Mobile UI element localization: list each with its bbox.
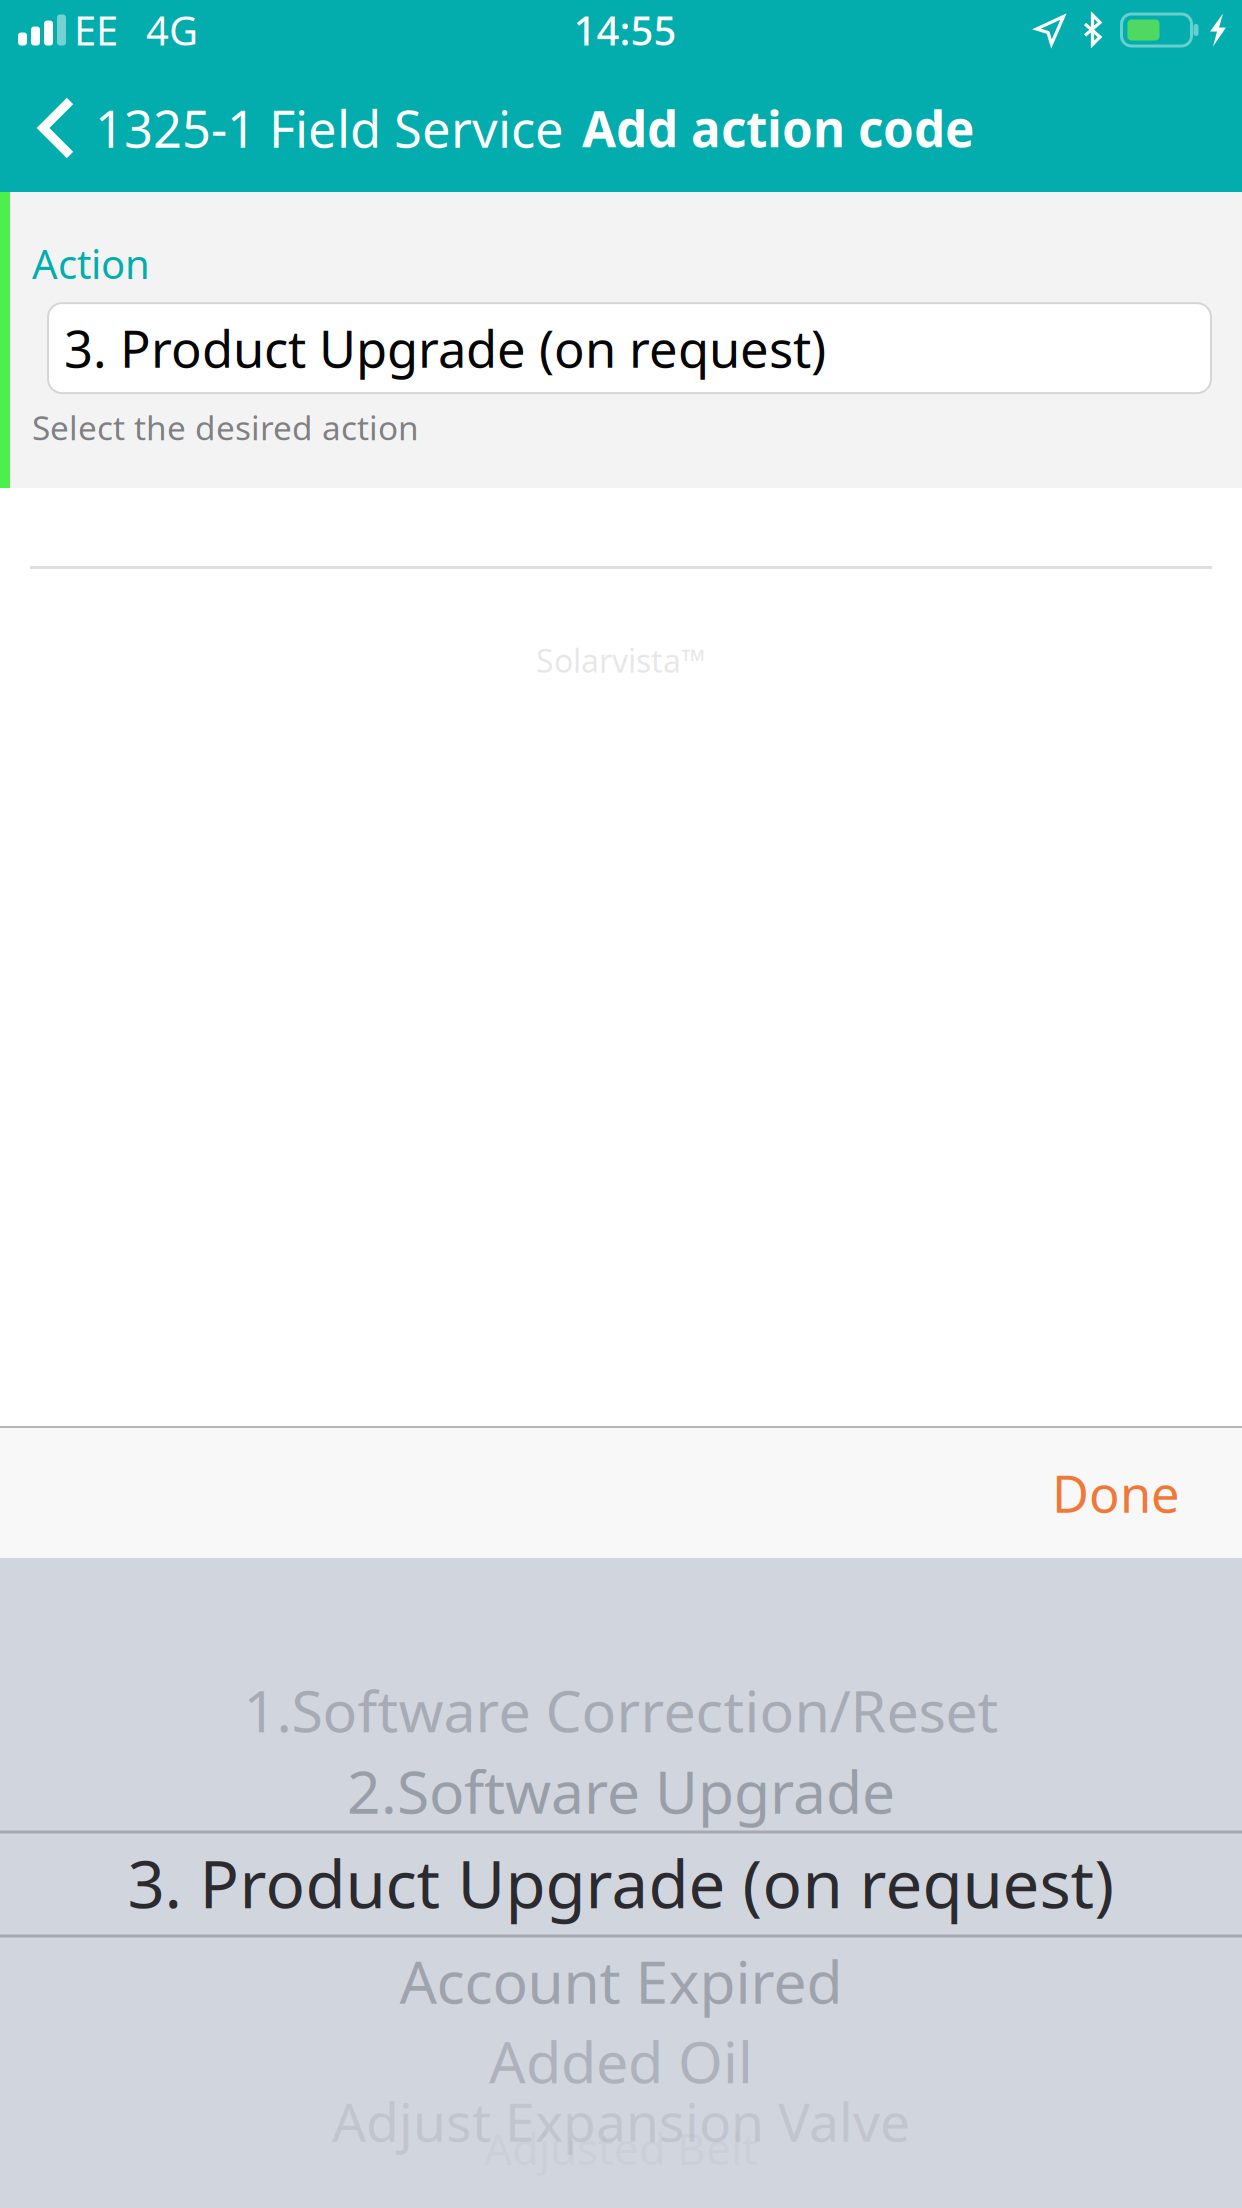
button[interactable]: 1.Software Correction/Reset: [0, 1676, 1242, 1743]
button[interactable]: Back to 1325-1 Field Service: [0, 64, 568, 192]
staticText: Added Oil: [489, 2023, 753, 2099]
staticText: 1.Software Correction/Reset: [243, 1672, 998, 1748]
staticText: Adjusted Belt: [484, 2119, 758, 2177]
staticText: Select the desired action: [32, 405, 419, 449]
button[interactable]: Adjust Expansion Valve: [0, 2089, 1242, 2153]
staticText: Solarvista™: [536, 639, 706, 681]
staticText: Action: [32, 237, 150, 290]
button[interactable]: Account Expired: [0, 1947, 1242, 2015]
staticText: 14:55: [573, 3, 676, 56]
staticText: 4G: [146, 3, 198, 56]
button[interactable]: 2.Software Upgrade: [0, 1757, 1242, 1825]
staticText: Add action code: [582, 95, 974, 161]
staticText: 2.Software Upgrade: [347, 1752, 895, 1830]
staticText: 3. Product Upgrade (on request): [127, 1840, 1114, 1926]
button[interactable]: 3. Product Upgrade (on request): [48, 303, 1211, 393]
button[interactable]: 3. Product Upgrade (on request): [0, 1832, 1242, 1933]
staticText: 1325-1 Field Service: [95, 94, 564, 162]
button[interactable]: Adjusted Belt: [0, 2119, 1242, 2176]
staticText: Adjust Expansion Valve: [332, 2086, 910, 2156]
button[interactable]: Done: [1022, 1431, 1210, 1555]
staticText: Account Expired: [399, 1942, 842, 2020]
button[interactable]: Added Oil: [0, 2027, 1242, 2094]
staticText: 3. Product Upgrade (on request): [64, 314, 826, 382]
staticText: EE: [74, 3, 118, 56]
staticText: Done: [1052, 1459, 1180, 1527]
